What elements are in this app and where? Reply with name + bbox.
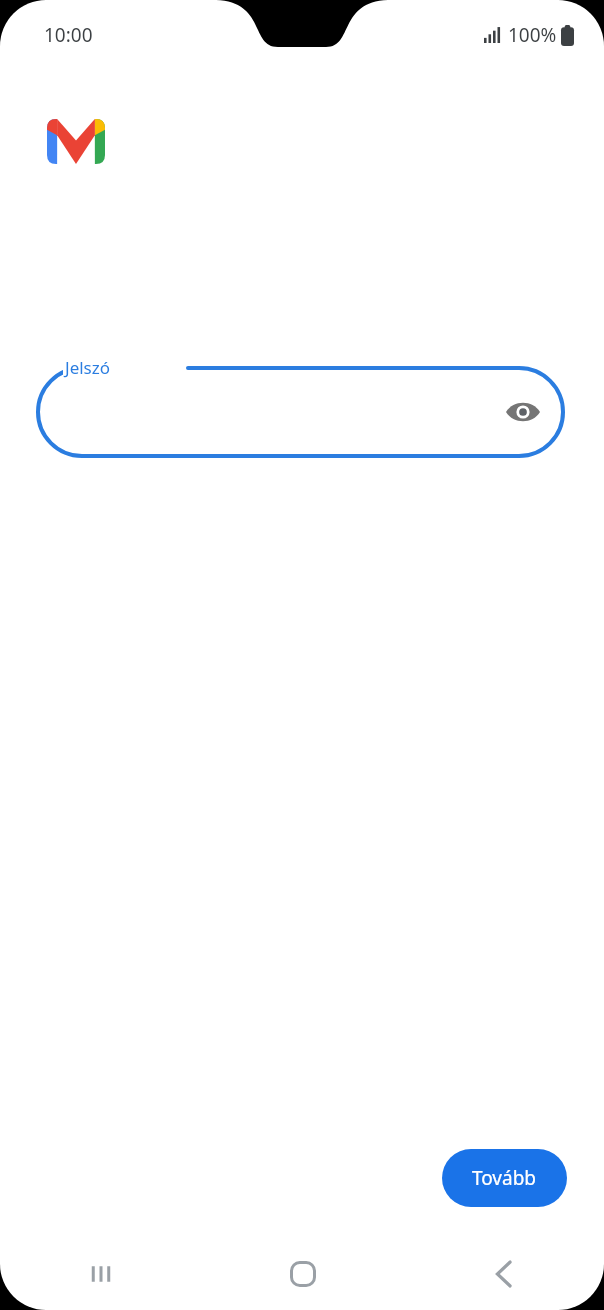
staticText: 100% xyxy=(508,22,557,48)
staticText: Tovább xyxy=(472,1165,537,1191)
button[interactable]: Tovább xyxy=(442,1149,567,1207)
staticText: Jelszó xyxy=(65,356,111,379)
button[interactable]: Jelszó megjelenítése xyxy=(499,388,547,436)
button[interactable]: Home xyxy=(202,1238,403,1310)
button[interactable]: Recent apps xyxy=(0,1238,202,1310)
button[interactable]: Jelszó xyxy=(36,366,565,458)
button[interactable]: Back xyxy=(403,1238,604,1310)
staticText: 10:00 xyxy=(44,22,93,48)
